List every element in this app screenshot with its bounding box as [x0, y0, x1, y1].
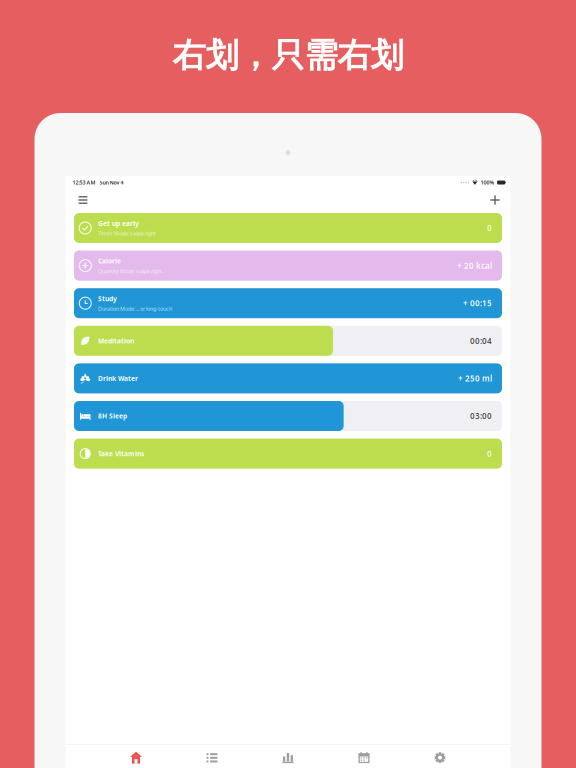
button[interactable]: Get up early — [74, 213, 502, 243]
staticText: 100% — [480, 179, 494, 186]
button[interactable]: Take Vitamins — [74, 439, 502, 469]
staticText: Take Vitamins — [98, 449, 144, 458]
button[interactable]: Study — [74, 288, 502, 318]
staticText: Quantity Mode: swipe right... — [98, 268, 165, 275]
button[interactable]: Settings — [402, 745, 478, 768]
staticText: Meditation — [98, 336, 134, 345]
button[interactable]: Add habit — [482, 189, 508, 211]
button[interactable]: Meditation — [74, 326, 502, 356]
button[interactable]: Drink Water — [74, 363, 502, 393]
button[interactable]: Statistics — [250, 745, 326, 768]
button[interactable]: Menu — [70, 189, 96, 211]
staticText: Study — [98, 294, 117, 303]
staticText: + 20 kcal — [457, 260, 492, 271]
staticText: 00:04 — [470, 335, 492, 346]
staticText: + 00:15 — [463, 298, 492, 308]
staticText: 0 — [487, 223, 492, 233]
staticText: + 250 ml — [458, 373, 492, 384]
staticText: 0 — [487, 448, 492, 459]
button[interactable]: Home — [98, 745, 174, 768]
staticText: 03:00 — [470, 411, 492, 421]
button[interactable]: Calendar — [326, 745, 402, 768]
staticText: Drink Water — [98, 374, 138, 383]
staticText: Sun Nov 4 — [99, 179, 123, 186]
staticText: Times Mode: swipe right — [98, 230, 156, 237]
button[interactable]: Habits — [174, 745, 250, 768]
button[interactable]: 8H Sleep — [74, 401, 502, 431]
staticText: Duration Mode: ... or long-touch — [98, 305, 172, 312]
staticText: 8H Sleep — [98, 412, 127, 420]
staticText: 右划，只需右划 — [172, 35, 403, 76]
staticText: Calorie — [98, 256, 121, 265]
staticText: Get up early — [98, 219, 139, 228]
button[interactable]: Calorie — [74, 251, 502, 281]
staticText: 12:53 AM — [72, 179, 95, 186]
